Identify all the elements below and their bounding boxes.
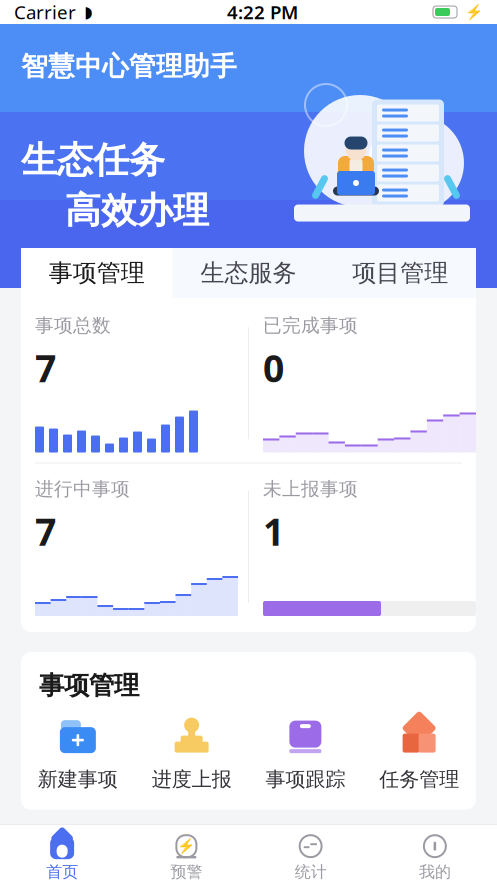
button[interactable]: 首页 bbox=[0, 832, 124, 882]
staticText: 高效办理 bbox=[65, 188, 209, 233]
staticText: 事项管理 bbox=[39, 670, 139, 701]
staticText: 7 bbox=[35, 506, 56, 556]
staticText: 项目管理 bbox=[352, 258, 448, 288]
staticText: 统计 bbox=[295, 862, 327, 882]
staticText: 事项管理 bbox=[49, 258, 145, 288]
staticText: Carrier bbox=[14, 0, 76, 24]
staticText: ⚡ bbox=[177, 838, 195, 855]
button[interactable]: 进度上报 bbox=[135, 717, 249, 792]
button[interactable]: 新建事项 bbox=[21, 717, 135, 792]
staticText: 0 bbox=[263, 343, 284, 392]
staticText: ◗ bbox=[84, 3, 92, 21]
button[interactable]: 统计 bbox=[248, 832, 373, 882]
button[interactable]: 任务管理 bbox=[362, 717, 476, 792]
button[interactable]: ⚡ bbox=[124, 832, 248, 882]
staticText: 进行中事项 bbox=[35, 477, 130, 500]
staticText: 预警 bbox=[170, 862, 202, 882]
staticText: 事项总数 bbox=[35, 314, 111, 337]
staticText: 1 bbox=[263, 506, 284, 556]
button[interactable]: 生态服务 bbox=[173, 248, 324, 298]
staticText: 已完成事项 bbox=[263, 314, 358, 337]
staticText: ⚡ bbox=[465, 4, 483, 20]
staticText: 我的 bbox=[419, 862, 451, 882]
button[interactable]: 事项跟踪 bbox=[248, 717, 362, 792]
button[interactable]: 事项管理 bbox=[21, 248, 173, 298]
staticText: 任务管理 bbox=[379, 767, 459, 792]
staticText: 7 bbox=[35, 343, 56, 392]
staticText: 新建事项 bbox=[38, 767, 118, 792]
staticText: 生态服务 bbox=[200, 258, 296, 288]
staticText: 首页 bbox=[46, 862, 78, 882]
button[interactable]: 我的 bbox=[373, 832, 497, 882]
staticText: 智慧中心管理助手 bbox=[21, 50, 237, 83]
staticText: 4:22 PM bbox=[227, 0, 298, 24]
staticText: 事项跟踪 bbox=[265, 767, 345, 792]
staticText: 未上报事项 bbox=[263, 477, 358, 500]
staticText: 生态任务 bbox=[21, 138, 165, 182]
staticText: 进度上报 bbox=[152, 767, 232, 792]
button[interactable]: 项目管理 bbox=[324, 248, 476, 298]
